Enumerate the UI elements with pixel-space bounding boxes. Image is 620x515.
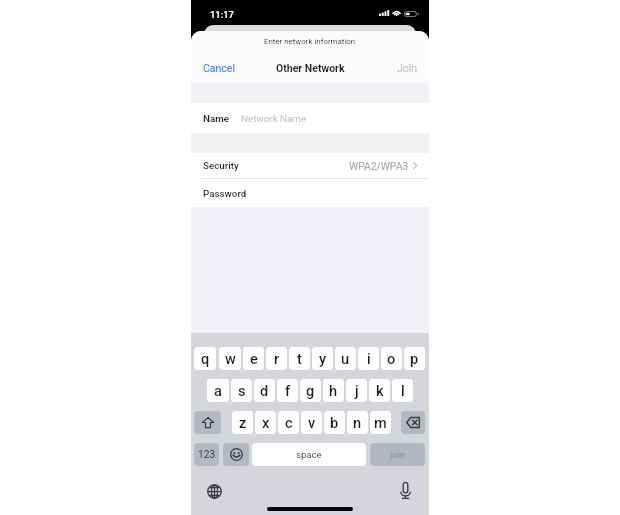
button[interactable]: s (231, 379, 252, 402)
button[interactable]: v (301, 411, 322, 434)
button[interactable]: Backspace (401, 411, 425, 434)
button[interactable]: n (347, 411, 368, 434)
staticText: Name (203, 113, 229, 124)
button[interactable]: 123 (194, 443, 219, 466)
button[interactable]: z (232, 411, 253, 434)
staticText: b (330, 414, 339, 431)
staticText: w (225, 350, 236, 367)
staticText: u (341, 350, 350, 367)
button[interactable]: d (254, 379, 275, 402)
button[interactable]: w (219, 347, 241, 370)
staticText: r (274, 350, 280, 367)
button[interactable]: Security (191, 153, 429, 178)
button[interactable]: h (323, 379, 344, 402)
staticText: Security (203, 160, 239, 171)
button[interactable]: o (381, 347, 402, 370)
staticText: x (262, 414, 270, 431)
button[interactable]: y (312, 347, 333, 370)
staticText: k (376, 382, 384, 399)
staticText: space (296, 449, 322, 460)
button[interactable]: Change keyboard (205, 482, 223, 500)
staticText: z (239, 414, 247, 431)
button[interactable]: b (324, 411, 345, 434)
staticText: h (329, 382, 338, 399)
staticText: f (285, 382, 291, 399)
staticText: c (285, 414, 293, 431)
staticText: d (260, 382, 269, 399)
button[interactable]: Cancel (191, 57, 245, 79)
staticText: i (367, 350, 371, 367)
button[interactable]: p (404, 347, 425, 370)
button[interactable]: q (194, 347, 216, 370)
staticText: n (353, 414, 362, 431)
staticText: Enter network information (264, 37, 356, 46)
button[interactable]: k (369, 379, 390, 402)
button[interactable]: space (252, 443, 366, 466)
staticText: e (250, 350, 258, 367)
button[interactable]: r (266, 347, 287, 370)
button[interactable]: Join (387, 57, 429, 79)
staticText: join (390, 449, 406, 460)
staticText: s (238, 382, 246, 399)
staticText: g (306, 382, 315, 399)
button[interactable]: u (335, 347, 356, 370)
button[interactable]: Shift (194, 411, 221, 434)
button[interactable]: Dictation (396, 481, 414, 499)
staticText: v (308, 414, 316, 431)
staticText: Network Name (241, 113, 307, 124)
staticText: t (297, 350, 302, 367)
button[interactable]: a (207, 379, 229, 402)
button[interactable]: m (370, 411, 391, 434)
staticText: p (410, 350, 419, 367)
button[interactable]: e (243, 347, 264, 370)
staticText: Other Network (276, 62, 345, 74)
staticText: 11:17 (210, 9, 234, 20)
button[interactable]: l (392, 379, 413, 402)
button[interactable]: c (278, 411, 299, 434)
button[interactable]: f (277, 379, 298, 402)
staticText: 123 (198, 449, 216, 461)
button[interactable]: i (358, 347, 379, 370)
staticText: q (201, 350, 210, 367)
staticText: l (401, 382, 405, 399)
button[interactable]: g (300, 379, 321, 402)
staticText: y (319, 350, 327, 367)
staticText: m (374, 414, 387, 431)
staticText: Cancel (203, 62, 235, 74)
button[interactable]: join (370, 443, 425, 466)
staticText: Join (397, 62, 418, 74)
button[interactable]: x (255, 411, 276, 434)
button[interactable]: Emoji (223, 443, 249, 466)
staticText: a (214, 382, 222, 399)
staticText: WPA2/WPA3 (349, 160, 409, 172)
button[interactable]: j (346, 379, 367, 402)
button[interactable]: Password (191, 179, 429, 207)
button[interactable]: t (289, 347, 310, 370)
staticText: Password (203, 188, 247, 199)
button[interactable]: Name (191, 103, 429, 133)
staticText: j (355, 382, 359, 399)
staticText: o (387, 350, 396, 367)
